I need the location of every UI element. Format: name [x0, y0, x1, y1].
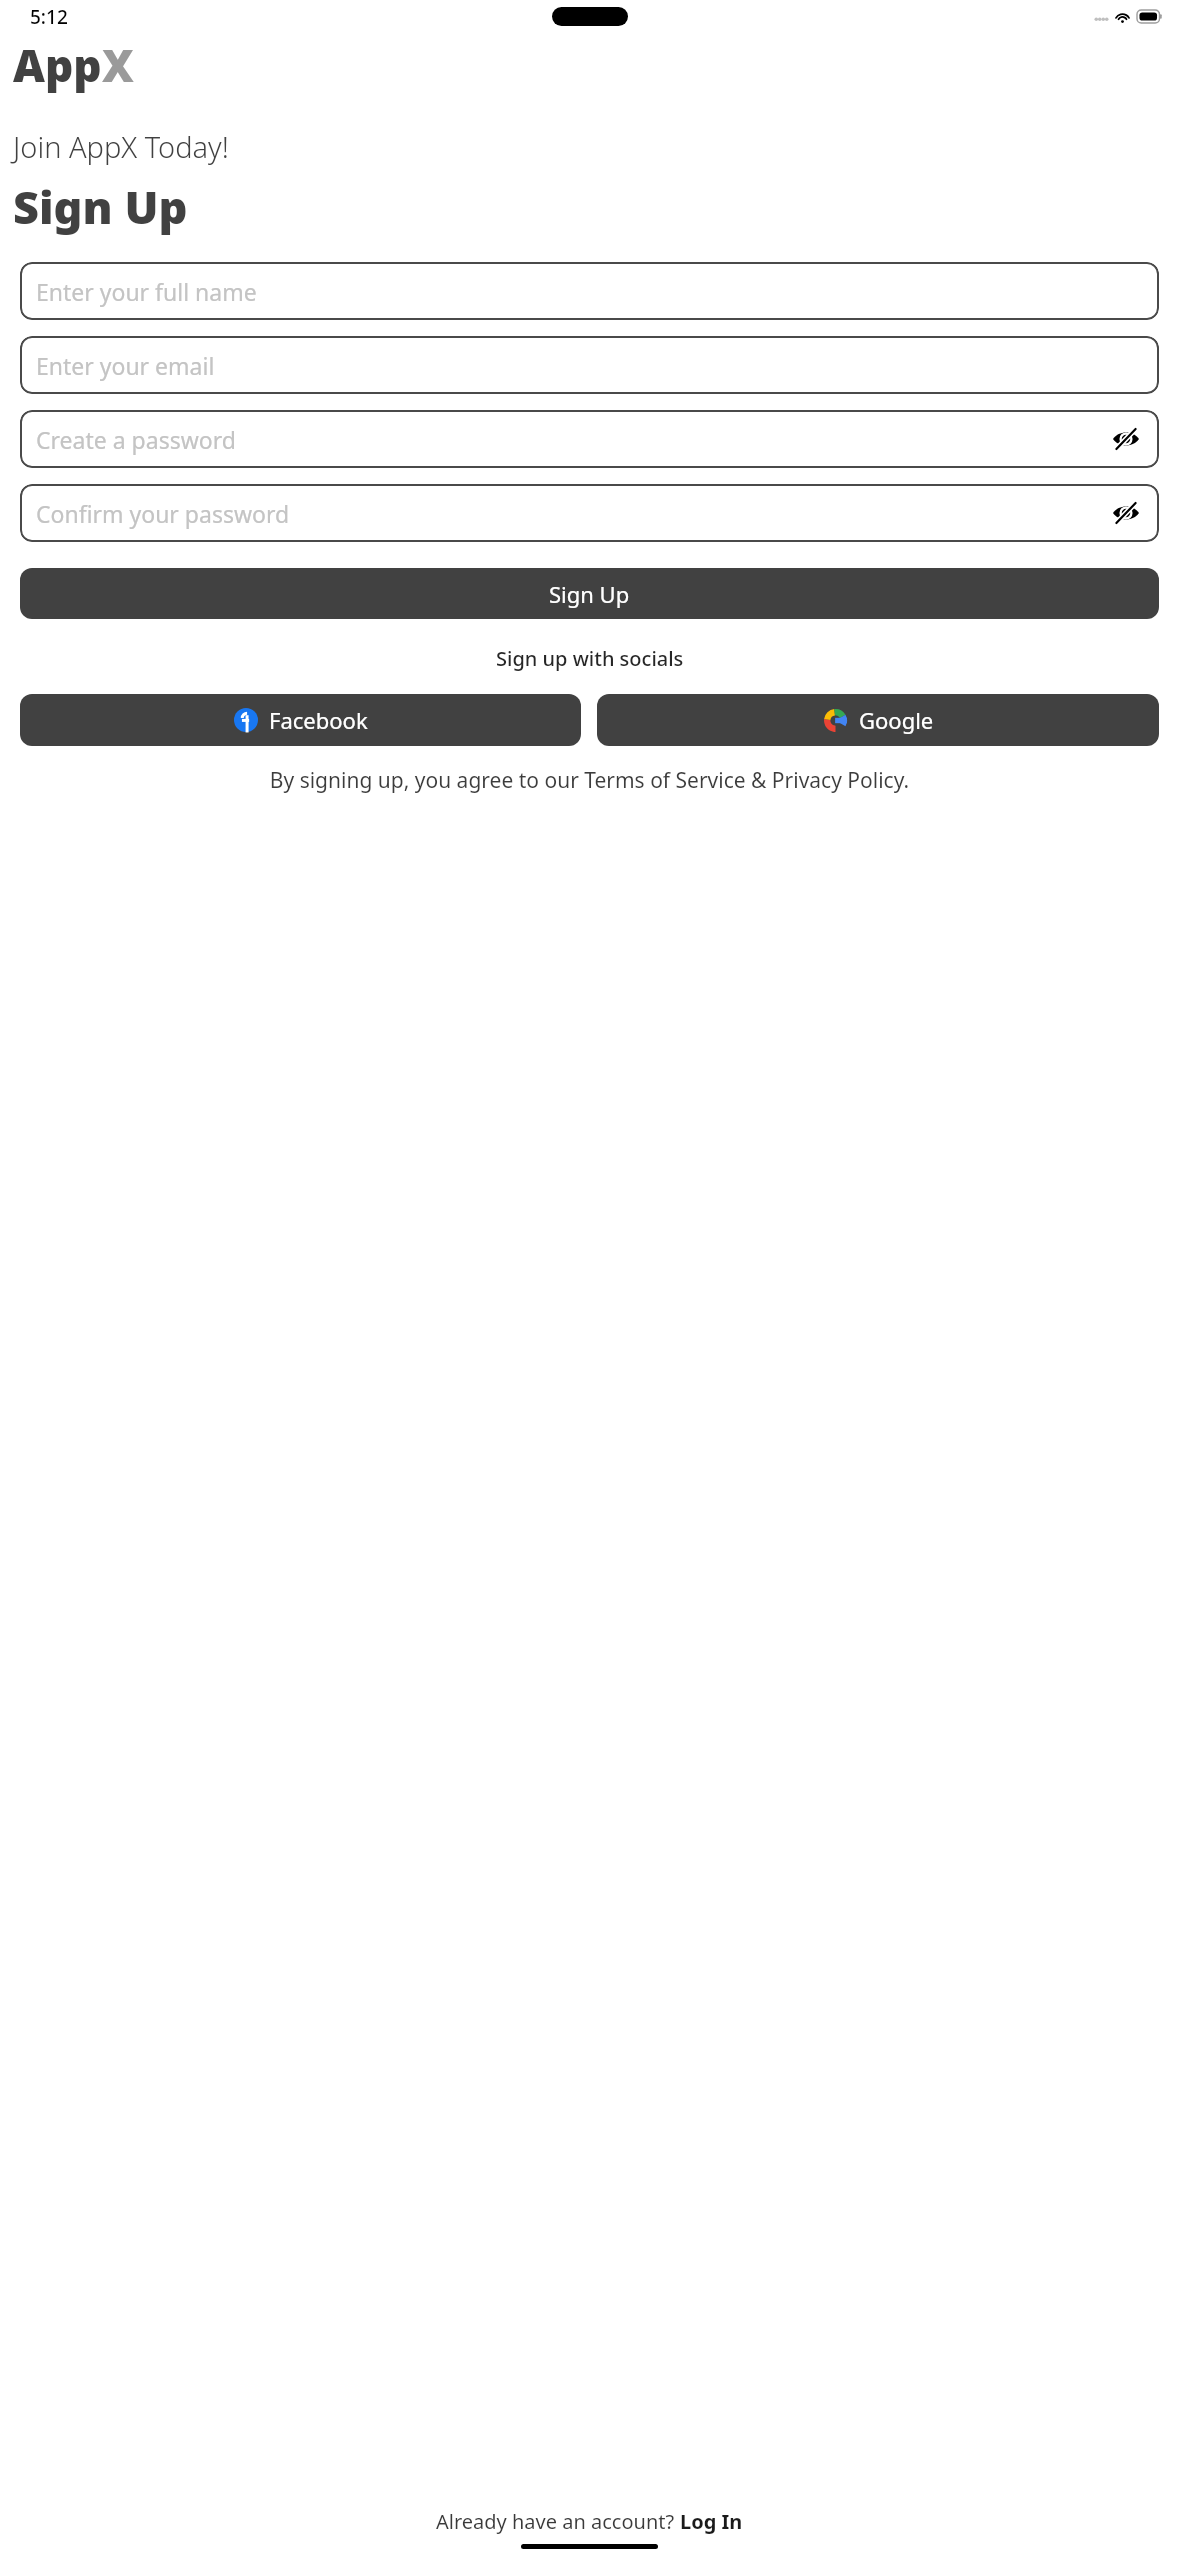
staticText: Already have an account? — [436, 2508, 680, 2535]
button[interactable]: Enter your email — [20, 336, 1159, 394]
button[interactable]: Sign Up — [20, 568, 1159, 619]
button[interactable]: Log In — [680, 2508, 743, 2535]
staticText: Sign Up — [13, 176, 188, 237]
staticText: 5:12 — [30, 4, 68, 30]
staticText: Sign up with socials — [496, 645, 684, 672]
button[interactable]: Google — [597, 694, 1159, 746]
button[interactable]: Enter your full name — [20, 262, 1159, 320]
staticText: Create a password — [36, 424, 1111, 455]
button[interactable]: Confirm your password — [20, 484, 1159, 542]
staticText: Enter your full name — [36, 276, 1141, 307]
staticText: Confirm your password — [36, 498, 1111, 529]
staticText: X — [102, 35, 134, 95]
staticText: Join AppX Today! — [13, 127, 229, 166]
staticText: App — [13, 35, 102, 95]
staticText: Log In — [680, 2508, 743, 2535]
staticText: Facebook — [269, 705, 368, 735]
staticText: By signing up, you agree to our Terms of… — [26, 766, 1153, 795]
button[interactable]: Create a password — [20, 410, 1159, 468]
button[interactable]: Facebook — [20, 694, 581, 746]
button[interactable]: Show password — [1111, 424, 1141, 454]
staticText: Enter your email — [36, 350, 1141, 381]
staticText: Google — [859, 705, 934, 735]
staticText: Sign Up — [549, 579, 630, 609]
button[interactable]: Show password — [1111, 498, 1141, 528]
